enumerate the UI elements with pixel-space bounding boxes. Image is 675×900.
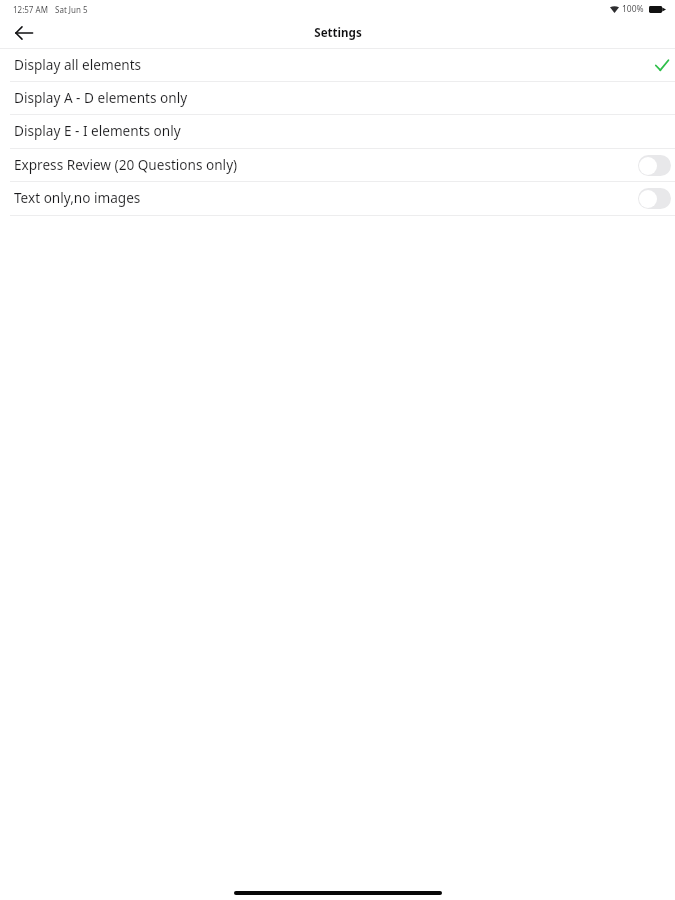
staticText: Express Review (20 Questions only) — [14, 155, 238, 174]
staticText: Display A - D elements only — [14, 88, 188, 107]
staticText: Display E - I elements only — [14, 121, 181, 140]
staticText: Display all elements — [14, 55, 142, 74]
button[interactable]: Toggle Text only,no images — [638, 188, 671, 209]
staticText: Text only,no images — [14, 188, 141, 207]
button[interactable]: Display A - D elements only — [0, 82, 675, 115]
button[interactable]: Toggle Express Review (20 Questions only… — [638, 155, 671, 176]
staticText: Sat Jun 5 — [55, 4, 88, 15]
button[interactable]: Display E - I elements only — [0, 115, 675, 149]
other: Selected — [655, 59, 669, 72]
staticText: 12:57 AM — [13, 4, 48, 15]
staticText: Settings — [314, 25, 362, 41]
button[interactable]: Display all elements — [0, 49, 675, 82]
staticText: 100% — [622, 3, 644, 15]
button[interactable]: Text only,no images — [0, 182, 675, 216]
button[interactable]: Express Review (20 Questions only) — [0, 149, 675, 182]
button[interactable]: Back — [10, 20, 38, 48]
